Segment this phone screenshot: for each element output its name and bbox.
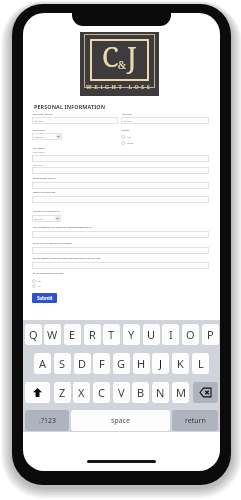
button[interactable] xyxy=(32,182,209,189)
staticText: Street Address xyxy=(33,151,45,153)
staticText: V xyxy=(118,385,125,400)
staticText: W xyxy=(47,327,58,342)
button[interactable]: E xyxy=(64,324,81,345)
staticText: DO YOU HAVE ANY FOOD OR DRUG ALLERGIES? xyxy=(33,242,73,244)
staticText: U xyxy=(147,327,156,342)
button[interactable]: X xyxy=(73,382,90,403)
staticText: H xyxy=(137,356,146,371)
button[interactable]: P xyxy=(202,324,219,345)
button[interactable]: First Name xyxy=(32,117,118,124)
staticText: return xyxy=(185,416,206,426)
button[interactable]: Last Name xyxy=(121,117,209,124)
button[interactable]: Shift xyxy=(25,382,50,403)
staticText: Male xyxy=(127,136,132,138)
staticText: M xyxy=(176,385,186,400)
staticText: mm/dd/yyyy xyxy=(34,136,45,138)
button[interactable]: Male xyxy=(121,134,132,139)
button[interactable]: V xyxy=(113,382,130,403)
staticText: ARE YOU CURRENTLY TAKING ANY MEDICATIONS… xyxy=(33,257,101,259)
staticText: O xyxy=(186,327,195,342)
button[interactable]: U xyxy=(143,324,160,345)
staticText: FIRST NAME xyxy=(33,113,44,115)
button[interactable]: return xyxy=(172,410,218,431)
button[interactable]: R xyxy=(84,324,101,345)
button[interactable]: M xyxy=(172,382,189,403)
button[interactable]: T xyxy=(103,324,120,345)
button[interactable]: I xyxy=(162,324,179,345)
button[interactable]: Yes xyxy=(32,278,41,283)
staticText: LAST NAME xyxy=(122,113,132,115)
staticText: PERSONAL INFORMATION xyxy=(34,103,106,110)
staticText: Z xyxy=(59,385,66,400)
button[interactable]: mm/dd/yyyy xyxy=(32,133,62,140)
staticText: PHONE NUMBER xyxy=(33,177,47,179)
button[interactable]: Select one xyxy=(32,215,61,222)
staticText: B xyxy=(137,385,145,400)
button[interactable]: J xyxy=(152,353,169,374)
staticText: Yes xyxy=(38,280,41,282)
staticText: P xyxy=(207,327,214,342)
staticText: HOW DID YOU HEAR ABOUT US? xyxy=(33,210,60,212)
staticText: Submit xyxy=(37,295,53,301)
staticText: FULL ADDRESS xyxy=(33,147,46,149)
staticText: Q xyxy=(29,327,38,342)
button[interactable]: S xyxy=(54,353,71,374)
staticText: WEIGHT LOSS xyxy=(86,83,153,90)
staticText: Last Name xyxy=(123,120,132,122)
button[interactable]: W xyxy=(44,324,61,345)
button[interactable]: Submit xyxy=(32,293,57,303)
button[interactable]: N xyxy=(152,382,169,403)
button[interactable]: B xyxy=(132,382,149,403)
button[interactable]: .?123 xyxy=(25,410,69,431)
button[interactable]: Q xyxy=(25,324,42,345)
staticText: J xyxy=(127,38,137,75)
staticText: F xyxy=(99,356,105,371)
staticText: Street Line 2 xyxy=(33,164,43,166)
staticText: I xyxy=(169,327,173,342)
staticText: PRIMARY CARE PHYSICIAN xyxy=(33,191,56,193)
staticText: C xyxy=(98,385,105,400)
staticText: S xyxy=(59,356,66,371)
staticText: GENDER xyxy=(122,129,129,131)
button[interactable] xyxy=(32,247,209,254)
button[interactable]: Y xyxy=(123,324,140,345)
button[interactable]: F xyxy=(93,353,110,374)
staticText: J xyxy=(159,356,163,371)
button[interactable] xyxy=(32,155,209,162)
button[interactable]: K xyxy=(172,353,189,374)
button[interactable]: Backspace xyxy=(193,382,218,403)
button[interactable]: A xyxy=(34,353,51,374)
staticText: G xyxy=(117,356,126,371)
staticText: N xyxy=(156,385,165,400)
staticText: Select one xyxy=(34,218,43,220)
staticText: E xyxy=(69,327,76,342)
button[interactable]: Z xyxy=(54,382,71,403)
button[interactable] xyxy=(32,196,209,203)
staticText: T xyxy=(108,327,115,342)
staticText: .?123 xyxy=(39,416,56,426)
button[interactable]: Female xyxy=(121,140,134,145)
button[interactable]: C xyxy=(93,382,110,403)
staticText: HAVE YOU EVER BEEN ON A WEIGHT LOSS PROG… xyxy=(33,226,93,228)
button[interactable]: O xyxy=(182,324,199,345)
button[interactable]: L xyxy=(192,353,209,374)
staticText: Female xyxy=(127,142,134,144)
button[interactable] xyxy=(32,231,209,238)
staticText: space xyxy=(111,416,130,426)
button[interactable]: D xyxy=(74,353,91,374)
staticText: First Name xyxy=(34,120,44,122)
button[interactable]: G xyxy=(113,353,130,374)
button[interactable]: H xyxy=(133,353,150,374)
staticText: No xyxy=(38,285,41,287)
button[interactable] xyxy=(32,262,209,269)
staticText: DO YOU SMOKE OR DRINK ALCOHOL? xyxy=(33,272,65,274)
staticText: X xyxy=(78,385,85,400)
staticText: Required xyxy=(45,113,53,115)
staticText: DATE OF BIRTH xyxy=(33,129,46,131)
staticText: Y xyxy=(128,327,135,342)
staticText: D xyxy=(78,356,87,371)
staticText: L xyxy=(198,356,204,371)
button[interactable]: space xyxy=(71,410,170,431)
button[interactable]: No xyxy=(32,283,41,288)
button[interactable] xyxy=(32,167,209,174)
